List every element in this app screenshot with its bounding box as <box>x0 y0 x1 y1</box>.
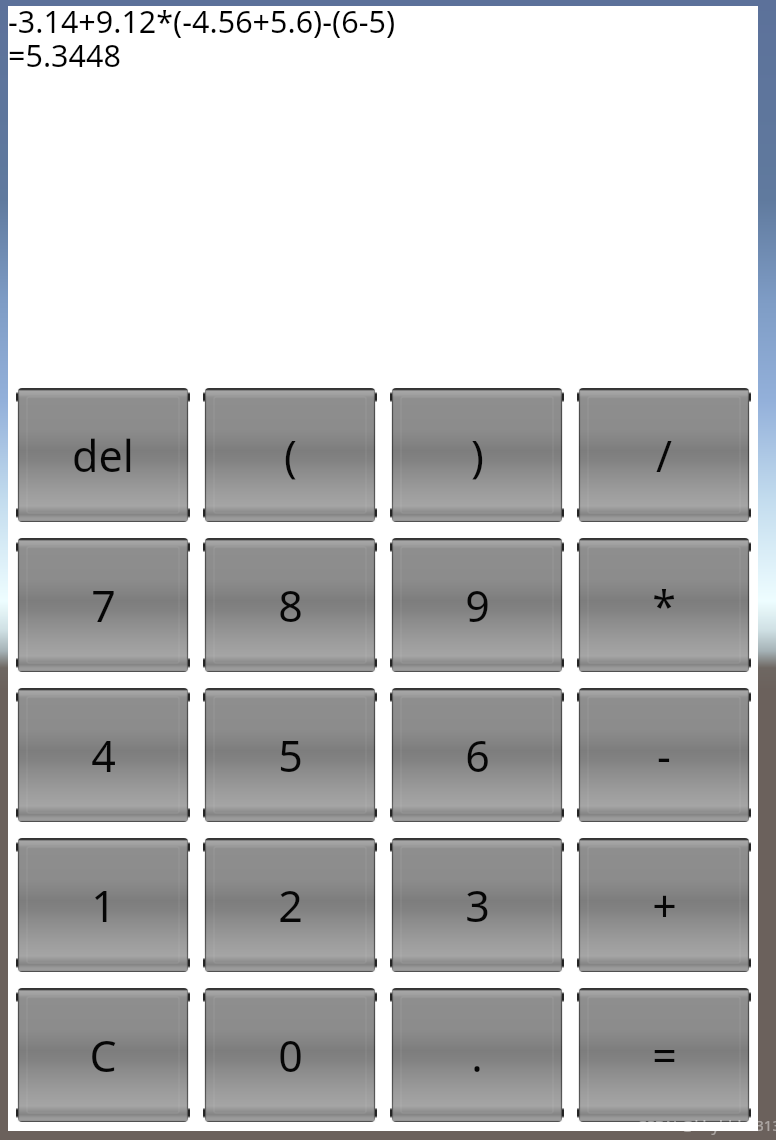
staticText: ( <box>284 426 297 485</box>
staticText: 1 <box>91 876 116 935</box>
staticText: 0 <box>278 1026 303 1085</box>
staticText: - <box>657 726 671 785</box>
button[interactable]: Multiply <box>577 538 751 672</box>
button[interactable]: 2 <box>203 838 377 972</box>
staticText: 6 <box>465 726 490 785</box>
button[interactable]: 0 <box>203 988 377 1122</box>
staticText: 4 <box>91 726 116 785</box>
staticText: / <box>656 426 672 485</box>
staticText: 7 <box>91 576 116 635</box>
button[interactable]: Equals <box>577 988 751 1122</box>
button[interactable]: Plus <box>577 838 751 972</box>
staticText: C <box>89 1026 117 1085</box>
button[interactable]: 3 <box>390 838 564 972</box>
staticText: . <box>471 1026 483 1085</box>
button[interactable]: 1 <box>16 838 190 972</box>
button[interactable]: 6 <box>390 688 564 822</box>
button[interactable]: 4 <box>16 688 190 822</box>
button[interactable]: 8 <box>203 538 377 672</box>
button[interactable]: Open bracket <box>203 388 377 522</box>
staticText: -3.14+9.12*(-4.56+5.6)-(6-5) =5.3448 <box>8 0 396 76</box>
staticText: del <box>72 426 134 485</box>
button[interactable]: 7 <box>16 538 190 672</box>
staticText: 3 <box>465 876 490 935</box>
button[interactable]: Divide <box>577 388 751 522</box>
button[interactable]: 9 <box>390 538 564 672</box>
button[interactable]: Delete <box>16 388 190 522</box>
button[interactable]: Close bracket <box>390 388 564 522</box>
staticText: ) <box>471 426 484 485</box>
button[interactable]: Decimal point <box>390 988 564 1122</box>
staticText: 2 <box>278 876 303 935</box>
staticText: 8 <box>278 576 303 635</box>
staticText: + <box>652 876 677 935</box>
button[interactable]: 5 <box>203 688 377 822</box>
staticText: * <box>652 576 676 635</box>
staticText: CSDN @kbybbb0313 <box>637 1115 776 1135</box>
staticText: 9 <box>465 576 490 635</box>
staticText: 5 <box>278 726 303 785</box>
staticText: = <box>652 1026 677 1085</box>
button[interactable]: Clear <box>16 988 190 1122</box>
button[interactable]: Minus <box>577 688 751 822</box>
button[interactable]: -3.14+9.12*(-4.56+5.6)-(6-5) =5.3448 <box>8 6 758 388</box>
